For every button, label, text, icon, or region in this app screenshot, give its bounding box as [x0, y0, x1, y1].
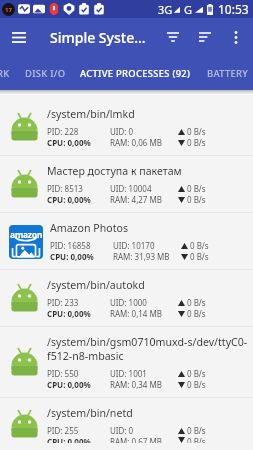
staticText: 0 B/s [187, 368, 206, 379]
button[interactable]: BATTERY [207, 56, 249, 90]
staticText: Simple Syste… [50, 28, 146, 47]
staticText: 3G [158, 2, 173, 17]
staticText: BATTERY [207, 67, 249, 80]
button[interactable]: /system/bin/netd [0, 398, 253, 450]
staticText: 0 B/s [187, 194, 206, 205]
staticText: UID: 10170 [113, 240, 155, 251]
staticText: /system/bin/netd [47, 406, 133, 420]
staticText: CPU: 0,00% [47, 436, 91, 443]
staticText: RAM: 31,93 MB [113, 251, 170, 262]
button[interactable]: Filter [157, 21, 189, 53]
staticText: CPU: 0,00% [47, 137, 91, 148]
staticText: RAM: 0,34 MB [110, 379, 162, 390]
staticText: CPU: 0,00% [47, 194, 91, 205]
staticText: /system/bin/lmkd [47, 107, 135, 121]
staticText: 0 B/s [187, 297, 206, 308]
staticText: UID: 1001 [110, 368, 147, 379]
staticText: G [184, 2, 193, 17]
staticText: RAM: 0,67 MB [110, 436, 162, 443]
button[interactable]: /system/bin/gsm0710muxd-s/dev/ttyC0- f51… [0, 327, 253, 398]
staticText: /system/bin/autokd [47, 278, 145, 292]
staticText: 0 B/s [187, 137, 206, 148]
staticText: RAM: 4,27 MB [110, 194, 162, 205]
button[interactable]: amazon [0, 213, 253, 270]
staticText: UID: 0 [110, 126, 134, 137]
button[interactable]: Sort [189, 21, 221, 53]
staticText: 0 B/s [187, 425, 206, 436]
staticText: DISK I/O [25, 67, 66, 80]
staticText: /system/bin/gsm0710muxd-s/dev/ttyC0- f51… [47, 335, 248, 363]
button[interactable]: /system/bin/autokd [0, 270, 253, 327]
staticText: 0 B/s [187, 183, 206, 194]
button[interactable]: ACTIVE PROCESSES (92) [80, 56, 191, 90]
button[interactable]: More options [221, 22, 251, 52]
staticText: RAM: 0,14 MB [110, 308, 162, 319]
staticText: PID: 8513 [47, 183, 83, 194]
staticText: Amazon Photos [50, 221, 128, 235]
staticText: RK [0, 67, 10, 80]
staticText: 0 B/s [187, 379, 206, 390]
staticText: 0 B/s [190, 240, 209, 251]
staticText: UID: 0 [110, 425, 134, 436]
staticText: 0 B/s [187, 126, 206, 137]
staticText: CPU: 0,00% [47, 379, 91, 390]
staticText: RAM: 0,06 MB [110, 137, 162, 148]
staticText: CPU: 0,00% [50, 251, 94, 262]
staticText: ACTIVE PROCESSES (92) [80, 67, 191, 80]
staticText: amazon [10, 229, 43, 241]
staticText: 0 B/s [187, 436, 206, 443]
staticText: PID: 228 [47, 126, 79, 137]
button[interactable]: DISK I/O [25, 56, 66, 90]
staticText: 10:53 [218, 1, 249, 17]
staticText: PID: 233 [47, 297, 79, 308]
staticText: PID: 255 [47, 425, 79, 436]
staticText: CPU: 0,00% [47, 308, 91, 319]
button[interactable]: Open navigation menu [0, 18, 38, 56]
staticText: 17 [5, 6, 12, 14]
staticText: PID: 550 [47, 368, 79, 379]
staticText: PID: 16858 [50, 240, 91, 251]
staticText: Мастер доступа к пакетам [47, 164, 182, 178]
staticText: 0 B/s [190, 251, 209, 262]
button[interactable]: Мастер доступа к пакетам [0, 156, 253, 213]
button[interactable]: RK [0, 56, 10, 90]
staticText: UID: 1000 [110, 297, 147, 308]
button[interactable]: /system/bin/lmkd [0, 99, 253, 156]
staticText: 0 B/s [187, 308, 206, 319]
staticText: UID: 10004 [110, 183, 152, 194]
